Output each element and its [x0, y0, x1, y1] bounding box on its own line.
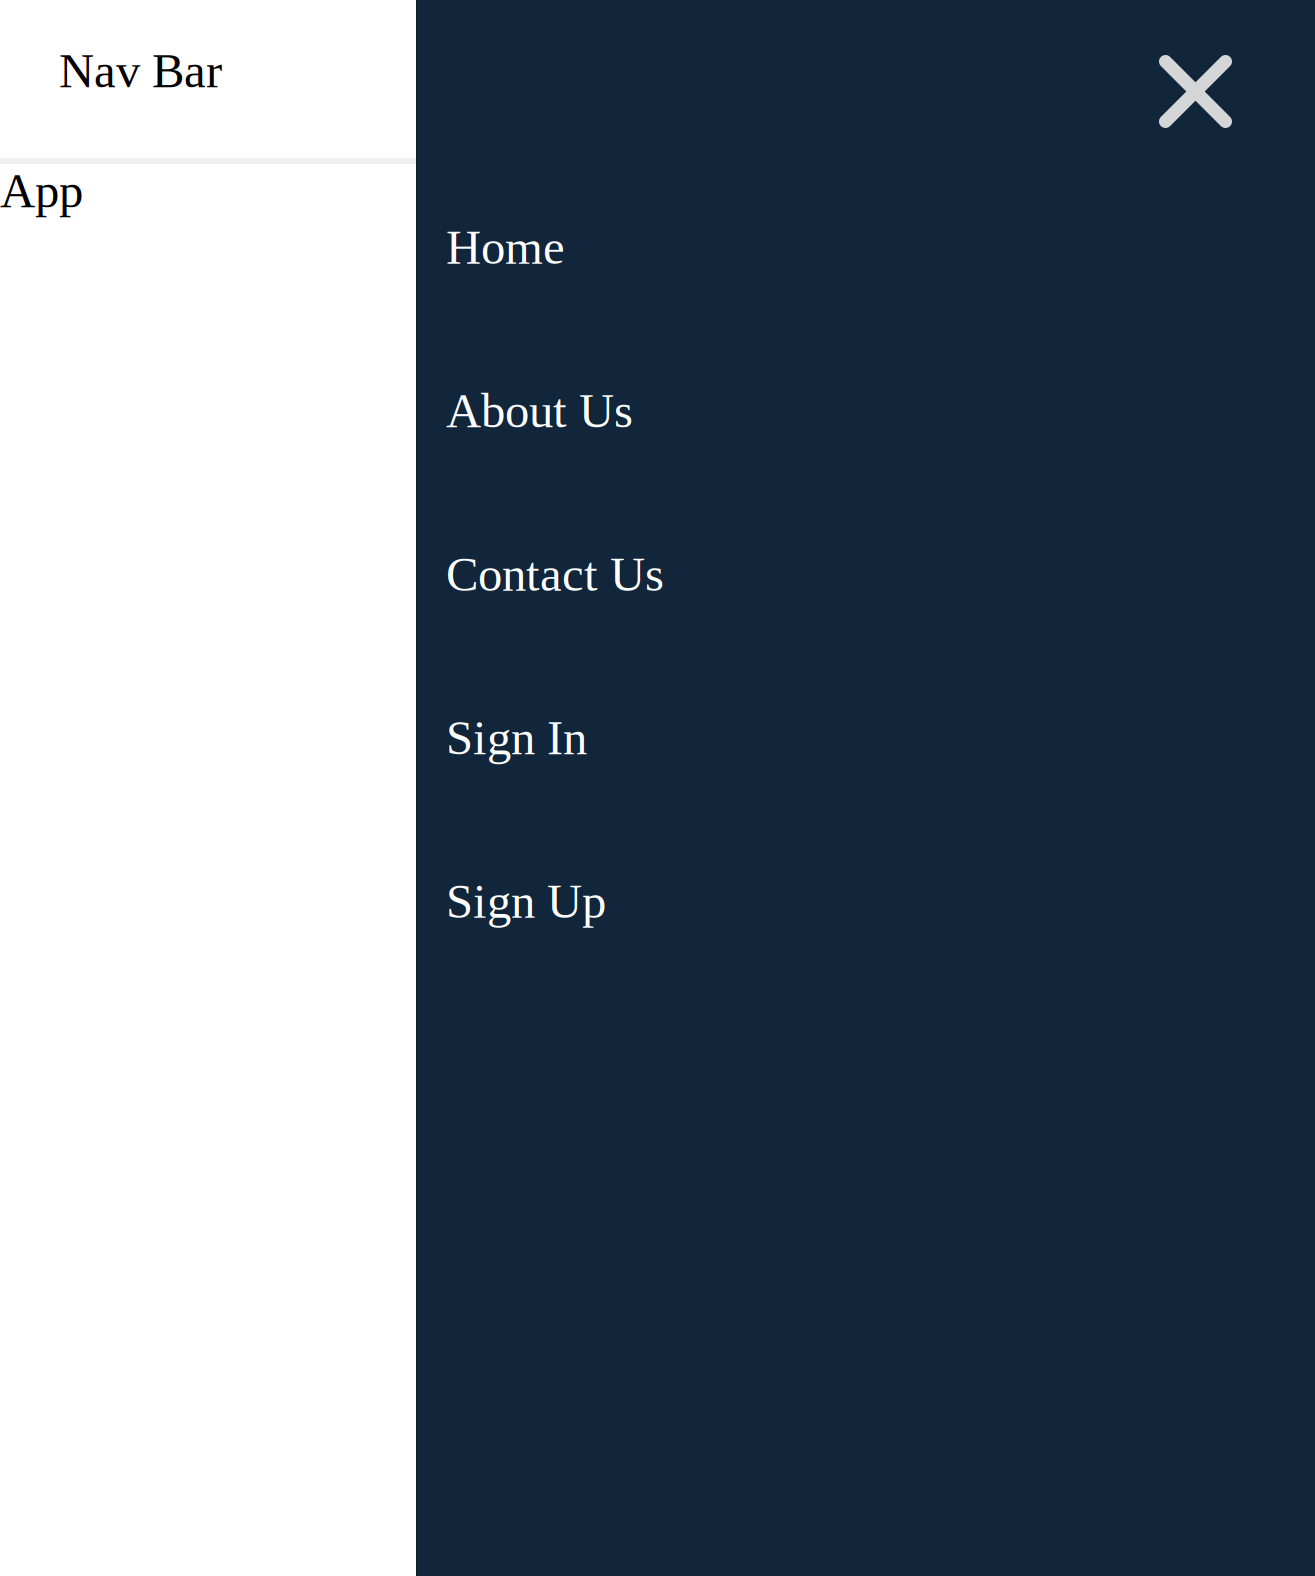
button[interactable]: About Us — [416, 384, 1315, 438]
staticText: Contact Us — [446, 547, 664, 601]
button[interactable]: Home — [416, 220, 1315, 274]
button[interactable]: Sign In — [416, 711, 1315, 765]
button[interactable]: Sign Up — [416, 874, 1315, 928]
button[interactable]: Close menu — [1159, 55, 1315, 128]
staticText: Nav Bar — [59, 44, 222, 98]
staticText: About Us — [446, 384, 633, 438]
staticText: Home — [446, 220, 565, 274]
staticText: Sign In — [446, 711, 587, 765]
button[interactable]: Contact Us — [416, 547, 1315, 601]
staticText: Sign Up — [446, 874, 606, 928]
staticText: App — [0, 164, 83, 218]
